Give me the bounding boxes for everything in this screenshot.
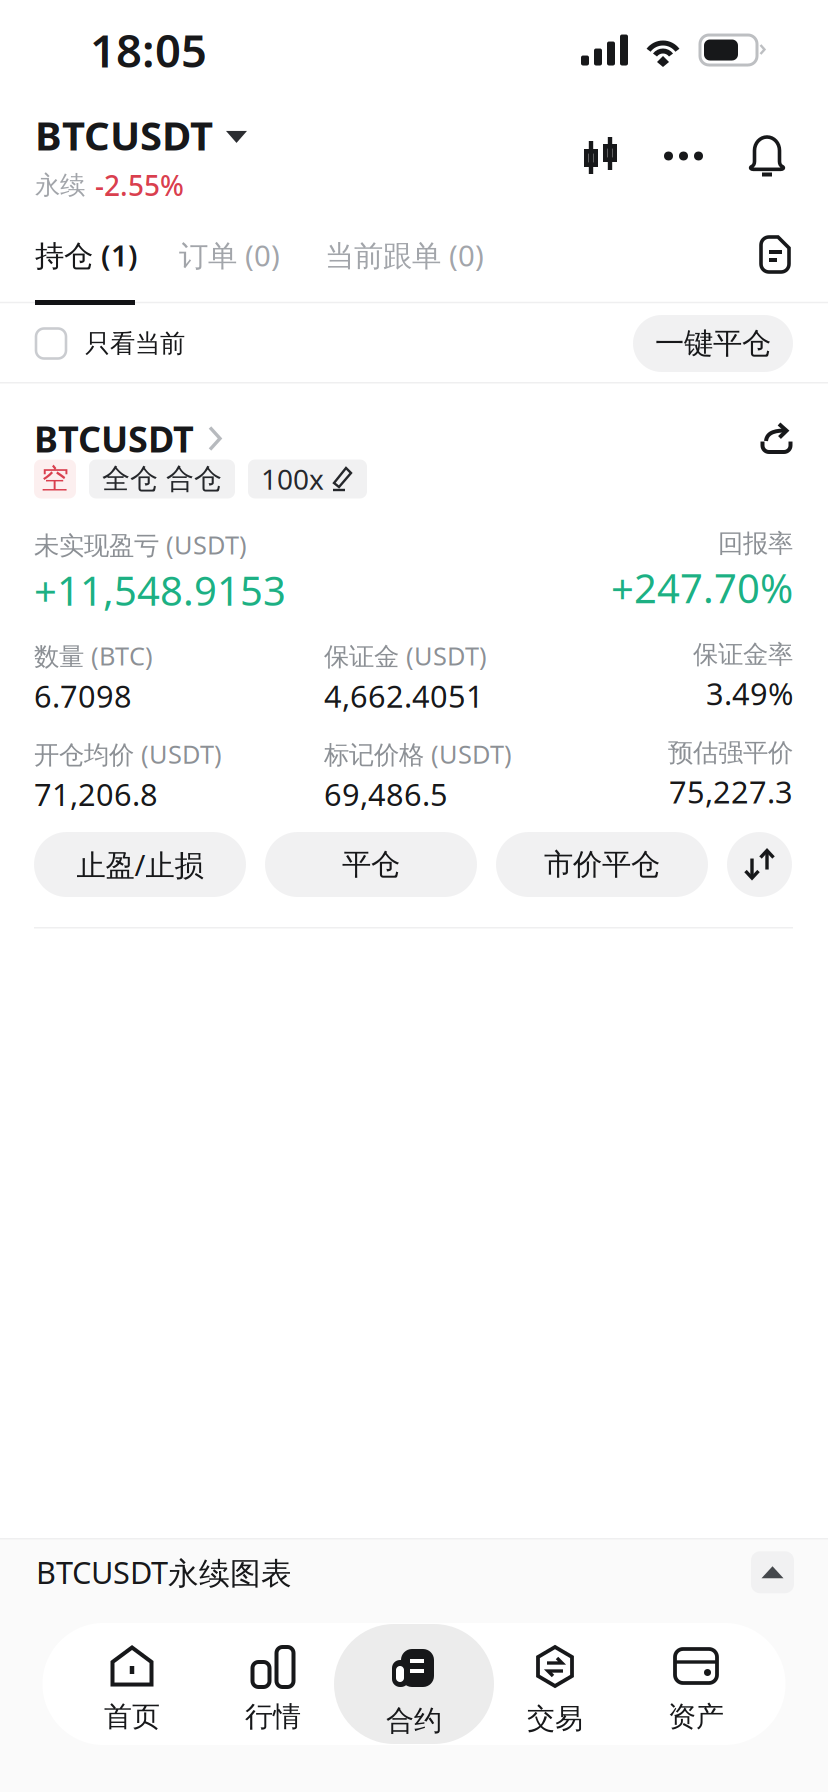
button[interactable]: Notifications	[703, 134, 786, 177]
staticText: 4,662.4051	[324, 675, 484, 717]
staticText: 保证金 (USDT)	[324, 638, 487, 673]
button[interactable]: 止盈/止损	[34, 832, 246, 897]
button[interactable]: 交易	[484, 1624, 625, 1744]
staticText: 18:05	[90, 19, 207, 81]
staticText: 回报率	[718, 527, 793, 559]
button[interactable]: BTCUSDT	[34, 417, 223, 459]
button[interactable]: 100x	[248, 459, 367, 498]
button[interactable]: 平仓	[265, 832, 477, 897]
button[interactable]: Reverse position	[727, 832, 792, 897]
staticText: 订单 (0)	[179, 235, 280, 275]
staticText: 资产	[668, 1699, 724, 1734]
staticText: 保证金率	[693, 638, 793, 670]
staticText: 平仓	[342, 846, 400, 883]
staticText: BTCUSDT	[34, 414, 194, 463]
button[interactable]: 持仓 (1)	[35, 235, 138, 275]
staticText: 持仓 (1)	[35, 235, 138, 275]
button[interactable]: 行情	[202, 1624, 343, 1744]
staticText: 行情	[245, 1699, 301, 1734]
staticText: 止盈/止损	[76, 845, 203, 885]
staticText: 100x	[261, 460, 324, 498]
staticText: 71,206.8	[34, 773, 158, 815]
button[interactable]: 资产	[625, 1624, 766, 1744]
button[interactable]: 合约	[343, 1624, 484, 1744]
staticText: 永续	[35, 169, 85, 201]
staticText: 75,227.3	[669, 771, 793, 812]
staticText: 开仓均价 (USDT)	[34, 737, 222, 771]
staticText: BTCUSDT	[35, 108, 213, 162]
button[interactable]: More	[618, 139, 703, 173]
staticText: 3.49%	[706, 672, 793, 714]
staticText: +11,548.9153	[34, 563, 286, 617]
staticText: 未实现盈亏 (USDT)	[34, 527, 247, 562]
staticText: 预估强平价	[668, 737, 793, 769]
staticText: -2.55%	[95, 166, 184, 204]
staticText: 数量 (BTC)	[34, 638, 153, 673]
staticText: 市价平仓	[544, 846, 660, 883]
button[interactable]: 市价平仓	[496, 832, 708, 897]
staticText: 合约	[386, 1703, 442, 1738]
button[interactable]: 首页	[61, 1624, 202, 1744]
button[interactable]: 当前跟单 (0)	[280, 235, 484, 275]
staticText: 只看当前	[85, 327, 185, 359]
button[interactable]: Expand chart	[751, 1551, 794, 1593]
button[interactable]: 只看当前	[36, 327, 185, 359]
button[interactable]: Order history	[757, 234, 793, 276]
staticText: 6.7098	[34, 675, 132, 717]
staticText: BTCUSDT永续图表	[36, 1551, 292, 1593]
staticText: 当前跟单 (0)	[325, 235, 484, 275]
staticText: 交易	[527, 1701, 583, 1736]
staticText: 空	[41, 461, 69, 497]
staticText: +247.70%	[611, 560, 793, 615]
button[interactable]: Share	[760, 422, 793, 454]
button[interactable]: 一键平仓	[633, 315, 793, 372]
staticText: 标记价格 (USDT)	[324, 737, 512, 771]
staticText: 首页	[104, 1699, 160, 1734]
button[interactable]: Chart	[584, 137, 618, 175]
button[interactable]: 订单 (0)	[138, 235, 280, 275]
staticText: 69,486.5	[324, 773, 448, 815]
staticText: 一键平仓	[655, 325, 771, 362]
staticText: 全仓 合仓	[102, 461, 222, 497]
